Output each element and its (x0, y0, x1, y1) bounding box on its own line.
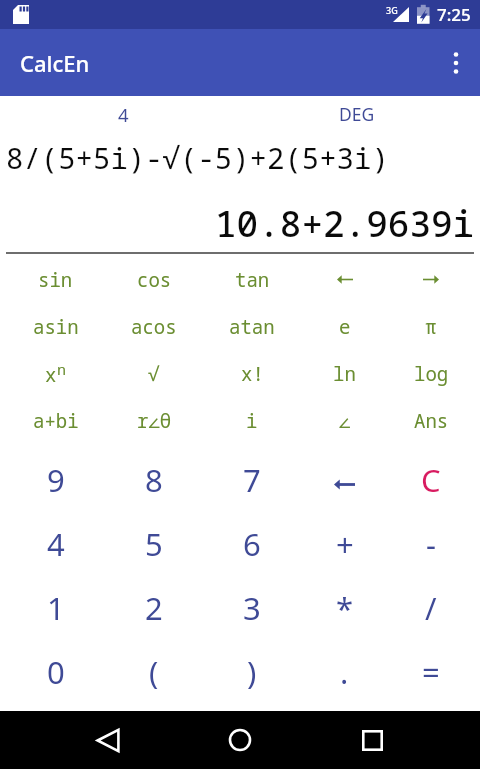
button[interactable]: x (0, 350, 111, 397)
staticText: x! (241, 361, 264, 387)
staticText: * (336, 587, 354, 629)
button[interactable]: 7 (197, 448, 307, 512)
button[interactable]: 5 (111, 512, 197, 576)
button[interactable] (307, 448, 382, 512)
staticText: sin (38, 267, 73, 293)
button[interactable]: ) (197, 640, 307, 704)
staticText: . (340, 651, 349, 693)
button[interactable]: 0 (0, 640, 111, 704)
button[interactable]: ( (111, 640, 197, 704)
button[interactable]: log (382, 350, 480, 397)
staticText: 6 (243, 523, 261, 565)
staticText: asin (33, 314, 79, 340)
button[interactable]: = (382, 640, 480, 704)
button[interactable]: / (382, 576, 480, 640)
button[interactable]: * (307, 576, 382, 640)
button[interactable]: tan (197, 256, 307, 303)
staticText: e (339, 314, 351, 340)
staticText: n (57, 359, 67, 379)
button[interactable]: a+bi (0, 397, 111, 444)
staticText: = (422, 651, 440, 693)
button[interactable]: 4 (0, 512, 111, 576)
button[interactable]: - (382, 512, 480, 576)
staticText: 0 (47, 651, 65, 693)
staticText: ( (149, 651, 159, 693)
button[interactable]: . (307, 640, 382, 704)
staticText: ln (333, 361, 356, 387)
staticText: 3G (386, 4, 398, 16)
staticText: 7 (243, 459, 261, 501)
staticText: 4 (118, 102, 129, 127)
staticText: √ (148, 361, 160, 387)
button[interactable]: Recent apps (342, 711, 402, 769)
staticText: 9 (47, 459, 65, 501)
button[interactable]: atan (197, 303, 307, 350)
staticText: tan (235, 267, 270, 293)
staticText: 10.8+2.9639i (215, 199, 475, 248)
button[interactable]: √ (111, 350, 197, 397)
staticText: atan (229, 314, 275, 340)
button[interactable]: r∠θ (111, 397, 197, 444)
staticText: 5 (145, 523, 163, 565)
button[interactable]: cos (111, 256, 197, 303)
staticText: 3 (243, 587, 261, 629)
button[interactable]: 3 (197, 576, 307, 640)
staticText: a+bi (33, 408, 79, 434)
button[interactable]: More options (430, 29, 480, 96)
staticText: / (425, 587, 437, 629)
button[interactable]: x! (197, 350, 307, 397)
staticText: 8/(5+5i)-√(-5)+2(5+3i) (6, 138, 389, 177)
button[interactable]: e (307, 303, 382, 350)
button[interactable]: 8 (111, 448, 197, 512)
button[interactable]: 6 (197, 512, 307, 576)
staticText: CalcEn (20, 48, 90, 78)
button[interactable]: 1 (0, 576, 111, 640)
staticText: acos (131, 314, 177, 340)
staticText: i (246, 408, 258, 434)
staticText: 4 (47, 523, 65, 565)
staticText: 8 (145, 459, 163, 501)
button[interactable]: ln (307, 350, 382, 397)
button[interactable]: ∠ (307, 397, 382, 444)
button[interactable]: + (307, 512, 382, 576)
staticText: ) (247, 651, 257, 693)
button[interactable]: asin (0, 303, 111, 350)
button[interactable]: 2 (111, 576, 197, 640)
button[interactable]: 9 (0, 448, 111, 512)
staticText: 7:25 (437, 3, 471, 26)
staticText: 2 (145, 587, 163, 629)
button[interactable]: π (382, 303, 480, 350)
button[interactable] (382, 256, 480, 303)
staticText: - (426, 523, 436, 565)
staticText: ∠ (339, 408, 351, 434)
button[interactable]: acos (111, 303, 197, 350)
staticText: x (45, 362, 57, 388)
staticText: C (421, 459, 441, 501)
staticText: DEG (339, 102, 375, 126)
staticText: 1 (47, 587, 65, 629)
button[interactable]: C (382, 448, 480, 512)
staticText: cos (137, 267, 172, 293)
button[interactable]: sin (0, 256, 111, 303)
staticText: log (414, 361, 449, 387)
button[interactable]: Ans (382, 397, 480, 444)
staticText: π (425, 314, 437, 340)
button[interactable]: Home (210, 711, 270, 769)
staticText: Ans (414, 408, 449, 434)
button[interactable]: i (197, 397, 307, 444)
staticText: + (336, 523, 354, 565)
button[interactable] (307, 256, 382, 303)
button[interactable]: Back (78, 711, 138, 769)
staticText: r∠θ (137, 408, 172, 434)
